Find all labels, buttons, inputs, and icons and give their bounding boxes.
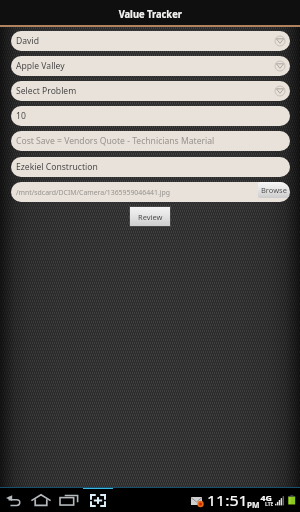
staticText: LTE	[265, 501, 274, 508]
staticText: PM	[247, 499, 260, 510]
staticText: Browse	[261, 185, 287, 195]
button[interactable]: Home	[28, 493, 54, 507]
staticText: Cost Save = Vendors Quote - Technicians …	[16, 135, 215, 147]
button[interactable]: Recent apps	[56, 493, 81, 507]
button[interactable]: Browse	[258, 182, 289, 198]
button[interactable]: Back	[0, 493, 25, 507]
button[interactable]: Select Problem	[11, 81, 290, 101]
staticText: /mnt/sdcard/DCIM/Camera/1365959046441.jp…	[16, 188, 171, 197]
button[interactable]: David	[11, 31, 290, 51]
staticText: Apple Valley	[16, 60, 65, 72]
staticText: Select Problem	[16, 85, 77, 97]
button[interactable]: 10	[11, 106, 290, 126]
button[interactable]: Review	[130, 207, 170, 226]
button[interactable]: Apple Valley	[11, 56, 290, 76]
button[interactable]: Ezekiel Construction	[11, 157, 290, 177]
staticText: 11:51	[207, 492, 248, 510]
staticText: Review	[138, 212, 163, 222]
button[interactable]: Cost Save = Vendors Quote - Technicians …	[11, 131, 290, 151]
staticText: 10	[16, 110, 26, 122]
staticText: Value Tracker	[119, 6, 182, 21]
staticText: 4G	[260, 492, 273, 503]
button[interactable]: Expand screen	[85, 493, 110, 507]
staticText: Ezekiel Construction	[16, 161, 98, 173]
staticText: David	[16, 35, 39, 47]
